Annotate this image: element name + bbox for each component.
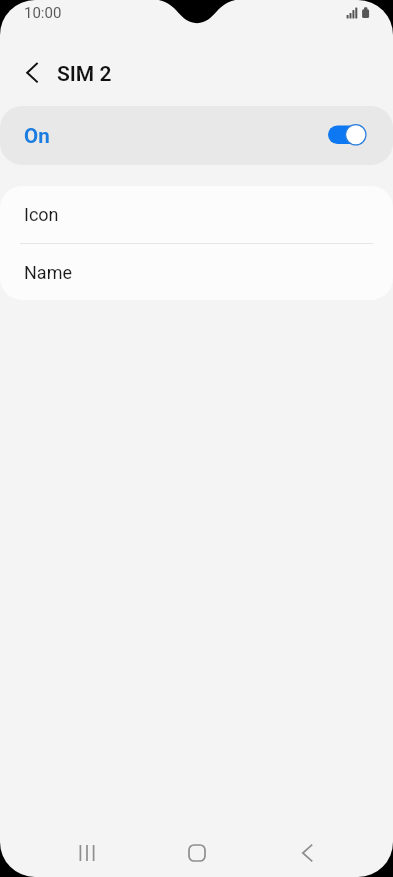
button[interactable]: Navigate up	[12, 52, 52, 92]
staticText: On	[24, 124, 50, 148]
staticText: SIM 2	[57, 62, 112, 87]
button[interactable]: Home	[173, 829, 221, 877]
button[interactable]: Name	[0, 244, 393, 300]
staticText: 10:00	[24, 4, 62, 22]
button[interactable]: Back	[283, 829, 331, 877]
button[interactable]: Recent apps	[63, 829, 111, 877]
button[interactable]: On	[0, 106, 393, 165]
button[interactable]: Icon	[0, 186, 393, 243]
staticText: Name	[24, 262, 72, 283]
other: SIM on	[0, 106, 393, 165]
staticText: Icon	[24, 204, 59, 225]
